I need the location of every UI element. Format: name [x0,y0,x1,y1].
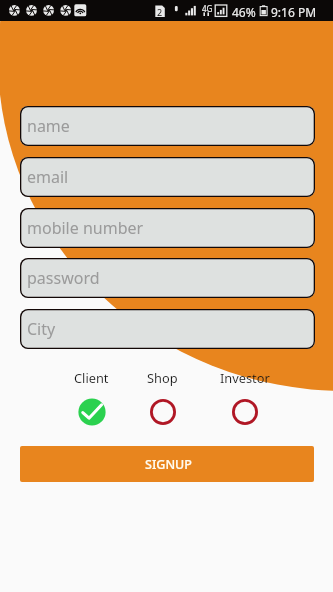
staticText: City [27,318,56,340]
button[interactable]: password [20,258,315,298]
staticText: Investor [220,369,270,386]
button[interactable]: SIGNUP [20,446,314,482]
staticText: 4G [202,3,213,14]
staticText: mobile number [27,217,144,239]
staticText: Client [74,369,109,386]
button[interactable]: mobile number [20,208,315,248]
button[interactable]: City [20,309,315,349]
staticText: name [27,115,70,137]
button[interactable]: name [20,106,315,146]
button[interactable]: Client [51,369,131,427]
staticText: 2 [157,6,163,18]
staticText: Shop [147,369,178,386]
button[interactable]: email [20,157,315,197]
staticText: SIGNUP [145,456,192,473]
staticText: email [27,166,69,188]
button[interactable]: Shop [122,369,202,427]
staticText: password [27,267,100,289]
staticText: 46% [232,4,256,20]
staticText: 9:16 PM [271,4,317,20]
button[interactable]: Investor [205,369,285,427]
